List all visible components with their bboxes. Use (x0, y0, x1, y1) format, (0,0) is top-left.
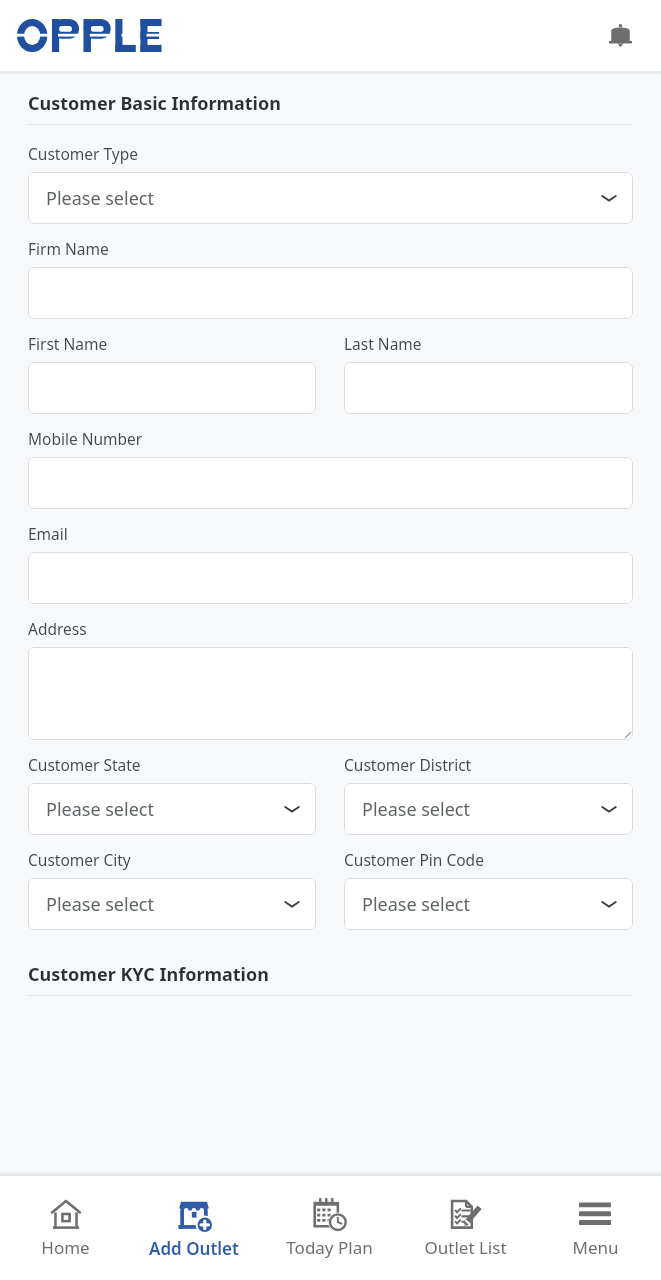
staticText: Please select (46, 797, 282, 822)
staticText: Please select (362, 797, 599, 822)
button[interactable]: Home (4, 1176, 127, 1280)
staticText: Customer KYC Information (28, 962, 269, 987)
button[interactable]: Today Plan (261, 1176, 397, 1280)
staticText: Customer District (344, 754, 472, 775)
staticText: Customer State (28, 754, 141, 775)
staticText: Address (28, 618, 87, 639)
staticText: Please select (46, 892, 282, 917)
button[interactable]: Outlet List (397, 1176, 533, 1280)
button[interactable]: Please select (28, 878, 316, 930)
button[interactable] (28, 362, 316, 414)
staticText: Please select (362, 892, 599, 917)
staticText: Home (41, 1236, 90, 1259)
staticText: Firm Name (28, 238, 109, 259)
button[interactable]: Please select (344, 783, 633, 835)
staticText: Mobile Number (28, 428, 143, 449)
button[interactable] (28, 267, 633, 319)
button[interactable] (28, 552, 633, 604)
staticText: Last Name (344, 333, 422, 354)
staticText: Customer Pin Code (344, 849, 484, 870)
staticText: Today Plan (286, 1236, 373, 1259)
staticText: Menu (572, 1236, 619, 1259)
button[interactable] (28, 647, 633, 740)
staticText: First Name (28, 333, 108, 354)
staticText: Customer Basic Information (28, 91, 281, 116)
staticText: Email (28, 523, 68, 544)
staticText: Add Outlet (149, 1237, 239, 1260)
button[interactable]: Notifications (597, 13, 643, 59)
staticText: Customer City (28, 849, 131, 870)
staticText: Outlet List (424, 1236, 507, 1259)
staticText: Customer Type (28, 143, 138, 164)
button[interactable]: Please select (28, 172, 633, 224)
staticText: Please select (46, 186, 599, 211)
button[interactable] (344, 362, 633, 414)
button[interactable]: Please select (344, 878, 633, 930)
button[interactable]: Please select (28, 783, 316, 835)
button[interactable]: Add Outlet (127, 1176, 261, 1280)
button[interactable]: Menu (533, 1176, 657, 1280)
button[interactable] (28, 457, 633, 509)
